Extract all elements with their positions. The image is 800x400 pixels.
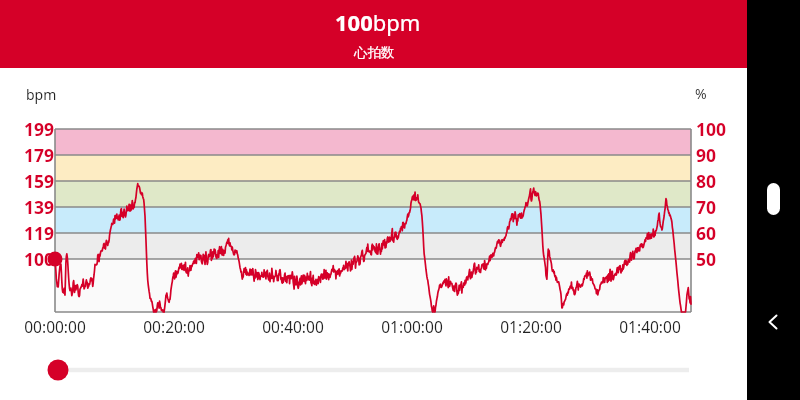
staticText: 00:00:00 <box>5 316 105 337</box>
staticText: 60 <box>696 221 756 245</box>
staticText: 心拍数 <box>354 44 395 61</box>
staticText: 100 <box>696 117 756 141</box>
button[interactable]: Back <box>757 306 789 338</box>
staticText: 00:20:00 <box>124 316 224 337</box>
button[interactable]: 100bpm <box>0 0 800 68</box>
staticText: 119 <box>0 221 54 245</box>
staticText: 01:20:00 <box>481 316 581 337</box>
staticText: 80 <box>696 169 756 193</box>
staticText: 199 <box>0 117 54 141</box>
staticText: 70 <box>696 195 756 219</box>
button[interactable]: Playback position <box>0 350 747 390</box>
staticText: 90 <box>696 143 756 167</box>
staticText: % <box>695 84 707 103</box>
staticText: 01:00:00 <box>362 316 462 337</box>
staticText: 100bpm <box>335 7 421 37</box>
staticText: 01:40:00 <box>600 316 700 337</box>
staticText: 50 <box>696 247 756 271</box>
staticText: 100 <box>0 247 54 271</box>
staticText: 00:40:00 <box>243 316 343 337</box>
staticText: bpm <box>26 85 57 104</box>
button[interactable]: Home <box>767 183 780 215</box>
staticText: 179 <box>0 143 54 167</box>
staticText: 159 <box>0 169 54 193</box>
staticText: 139 <box>0 195 54 219</box>
